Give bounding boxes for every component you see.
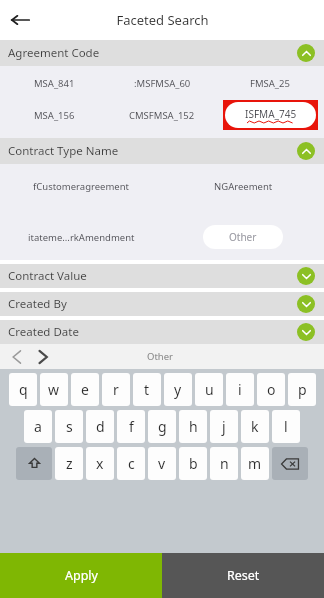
staticText: Apply [65,567,98,584]
button[interactable]: m [241,447,269,480]
button[interactable]: n [210,447,238,480]
button[interactable]: Agreement Code [0,40,324,66]
staticText: w [48,380,60,399]
staticText: fCustomeragreement [33,180,130,193]
staticText: u [205,380,214,399]
other: Expand Created By [297,295,315,313]
button[interactable]: MSA_841 [28,71,81,95]
button[interactable]: c [117,447,145,480]
button[interactable]: itateme...rkAmendment [22,225,141,249]
staticText: Contract Value [8,268,297,284]
staticText: MSA_156 [34,109,75,122]
button[interactable]: a [24,410,52,443]
staticText: p [298,380,307,399]
staticText: l [284,417,288,436]
staticText: n [220,454,229,473]
button[interactable]: d [86,410,114,443]
button[interactable]: Reset [162,553,324,598]
staticText: ISFMA_745 [245,107,297,121]
staticText: a [34,417,42,436]
button[interactable]: Contract Value [0,264,324,288]
button[interactable]: Other [203,225,283,249]
button[interactable]: o [257,373,285,406]
button[interactable]: j [210,410,238,443]
staticText: MSA_841 [34,77,75,90]
staticText: y [174,380,182,399]
other: Expand Created Date [297,323,315,341]
button[interactable]: w [40,373,68,406]
staticText: Created Date [8,324,297,340]
button[interactable]: Apply [0,553,162,598]
button[interactable]: Created By [0,292,324,316]
button[interactable]: u [195,373,223,406]
staticText: v [158,454,166,473]
other: Collapse Contract Type Name [297,142,315,160]
staticText: r [113,380,119,399]
staticText: itateme...rkAmendment [28,231,135,244]
staticText: FMSA_25 [250,77,290,90]
staticText: k [251,417,259,436]
button[interactable]: Back [6,6,34,34]
staticText: m [248,454,262,473]
staticText: Created By [8,296,297,312]
button[interactable]: g [148,410,176,443]
staticText: Faceted Search [116,11,209,29]
button[interactable]: k [241,410,269,443]
button[interactable]: fCustomeragreement [27,174,136,198]
button[interactable]: q [9,373,37,406]
staticText: d [96,417,105,436]
button[interactable]: FMSA_25 [244,71,296,95]
button[interactable]: Backspace [272,447,308,480]
staticText: CMSFMSA_152 [129,109,195,122]
button[interactable]: :MSFMSA_60 [128,71,197,95]
staticText: Other [229,230,257,244]
staticText: NGAreement [214,180,273,193]
button[interactable]: NGAreement [208,174,279,198]
button[interactable]: s [55,410,83,443]
staticText: t [144,380,150,399]
button[interactable]: MSA_156 [28,103,81,127]
button[interactable]: CMSFMSA_152 [123,103,201,127]
button[interactable]: t [133,373,161,406]
staticText: c [128,454,135,473]
staticText: Other [147,350,174,363]
staticText: :MSFMSA_60 [134,77,191,90]
button[interactable]: Next [30,344,56,369]
staticText: s [66,417,73,436]
button[interactable]: Created Date [0,320,324,344]
button[interactable]: Shift [16,447,52,480]
staticText: Agreement Code [8,45,297,61]
staticText: f [129,417,134,436]
button[interactable]: e [71,373,99,406]
other: Collapse Agreement Code [297,44,315,62]
staticText: x [96,454,104,473]
button[interactable]: v [148,447,176,480]
staticText: g [158,417,167,436]
button[interactable]: b [179,447,207,480]
button[interactable]: Contract Type Name [0,138,324,164]
button[interactable]: z [55,447,83,480]
staticText: z [66,454,73,473]
button[interactable]: l [272,410,300,443]
button[interactable]: i [226,373,254,406]
staticText: Contract Type Name [8,143,297,159]
button[interactable]: x [86,447,114,480]
button[interactable]: r [102,373,130,406]
button[interactable]: y [164,373,192,406]
staticText: i [238,380,242,399]
staticText: o [267,380,276,399]
other: Expand Contract Value [297,267,315,285]
staticText: Reset [227,567,260,584]
button[interactable]: ISFMA_745 [225,102,316,128]
staticText: e [81,380,89,399]
button[interactable]: p [288,373,316,406]
button[interactable]: h [179,410,207,443]
staticText: h [189,417,198,436]
button[interactable]: Previous [4,344,30,369]
staticText: q [19,380,28,399]
staticText: b [189,454,198,473]
staticText: j [222,417,226,436]
button[interactable]: Other [137,348,184,365]
button[interactable]: f [117,410,145,443]
